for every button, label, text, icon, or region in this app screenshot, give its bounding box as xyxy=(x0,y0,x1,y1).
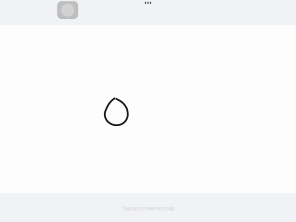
button[interactable]: Tool xyxy=(55,0,81,22)
staticText: Tap on screen to stop xyxy=(122,204,174,212)
button[interactable]: More xyxy=(141,0,155,8)
